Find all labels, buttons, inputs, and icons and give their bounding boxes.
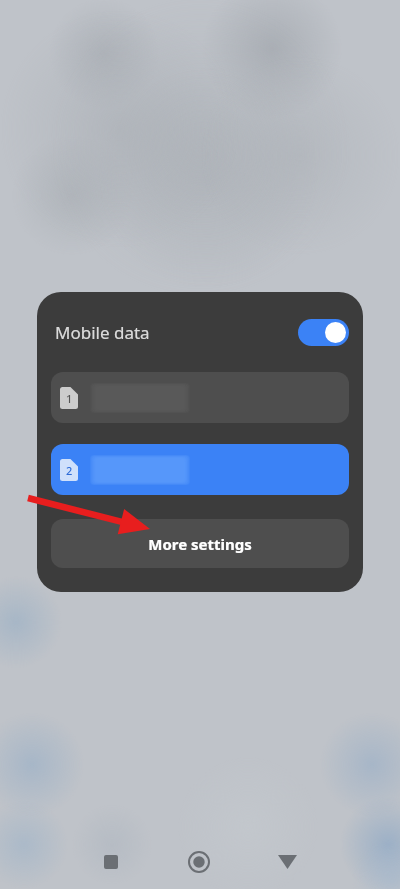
button[interactable]: More settings	[51, 519, 349, 568]
button[interactable]: Home	[175, 838, 223, 886]
staticText: 2	[66, 463, 73, 478]
button[interactable]: Recents	[87, 838, 135, 886]
button[interactable]: Mobile data toggle	[298, 319, 349, 346]
button[interactable]: 1	[51, 372, 349, 423]
button[interactable]: Mobile data	[37, 292, 363, 372]
staticText: 1	[66, 391, 73, 406]
staticText: Mobile data	[55, 321, 150, 344]
staticText: More settings	[148, 534, 252, 554]
button[interactable]: 2	[51, 444, 349, 495]
button[interactable]: Back	[263, 838, 311, 886]
